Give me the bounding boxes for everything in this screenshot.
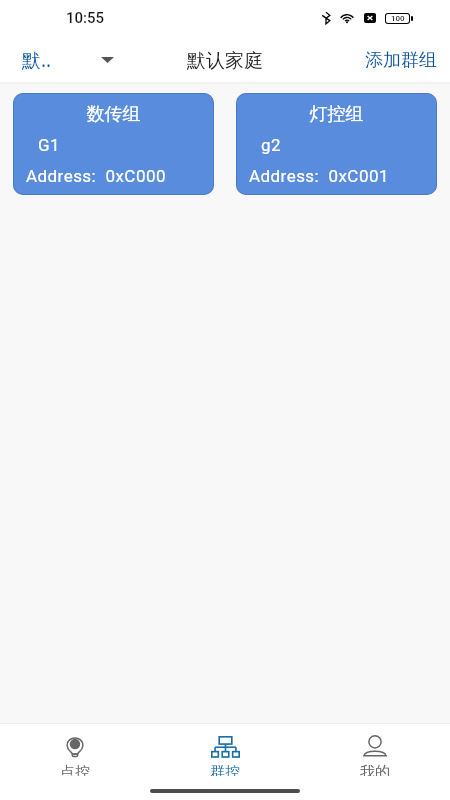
- button[interactable]: 灯控组: [236, 93, 437, 195]
- button[interactable]: 数传组: [13, 93, 214, 195]
- button[interactable]: 我的: [300, 724, 450, 776]
- staticText: Address: 0xC000: [26, 166, 166, 186]
- staticText: 点控: [60, 763, 90, 776]
- staticText: G1: [38, 135, 61, 155]
- staticText: g2: [261, 135, 282, 155]
- staticText: 100: [391, 14, 405, 23]
- staticText: 默认家庭: [187, 49, 263, 73]
- button[interactable]: 群控: [150, 724, 300, 776]
- staticText: 灯控组: [236, 103, 437, 126]
- button[interactable]: 添加群组: [351, 43, 450, 78]
- button[interactable]: 默..: [0, 41, 125, 79]
- staticText: 默..: [22, 47, 52, 73]
- staticText: 我的: [360, 763, 390, 776]
- staticText: 数传组: [13, 103, 214, 126]
- button[interactable]: 点控: [0, 724, 150, 776]
- staticText: 10:55: [66, 9, 105, 27]
- staticText: 群控: [210, 763, 240, 776]
- staticText: Address: 0xC001: [249, 166, 389, 186]
- staticText: 添加群组: [365, 49, 437, 72]
